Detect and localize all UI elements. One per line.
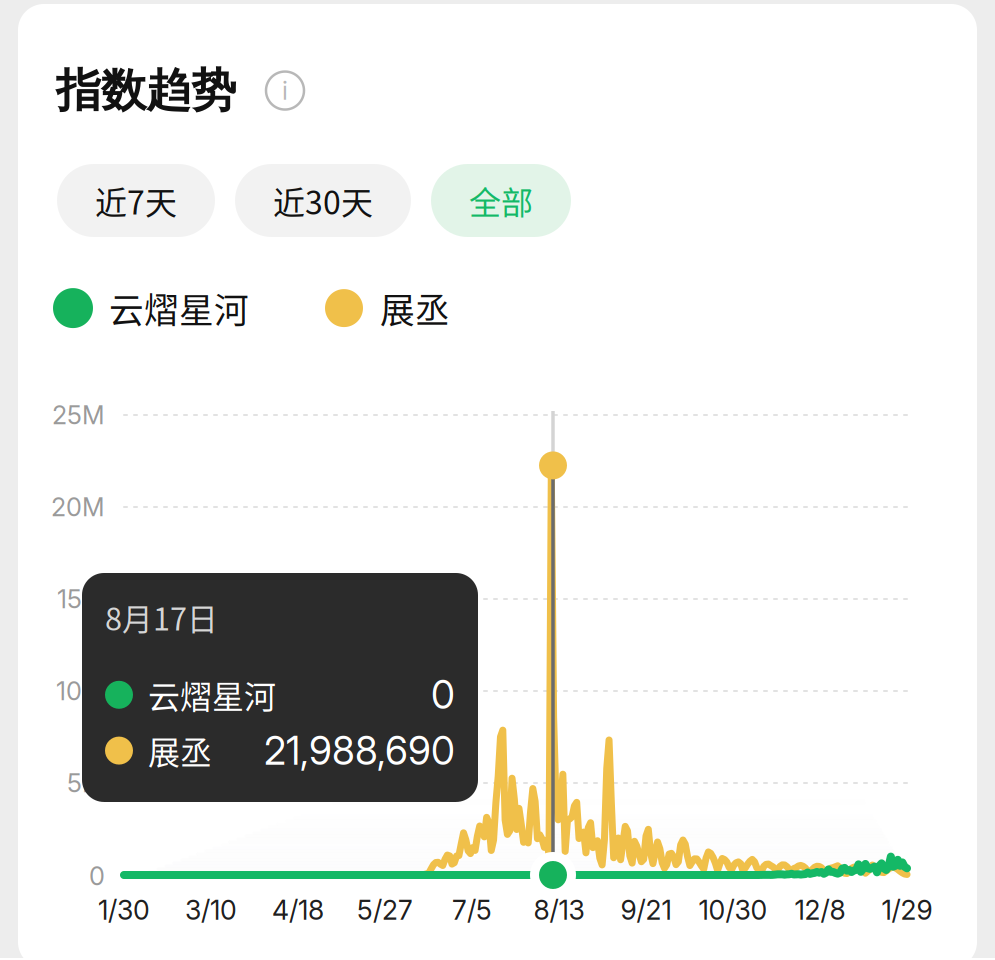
staticText: 7/5 <box>452 894 492 926</box>
staticText: 云熠星河 <box>109 283 249 333</box>
staticText: 25M <box>52 400 105 430</box>
staticText: 8/13 <box>533 894 584 926</box>
staticText: 21,988,690 <box>264 727 455 774</box>
staticText: 近30天 <box>273 177 373 224</box>
button[interactable]: 全部 <box>431 164 571 237</box>
button[interactable]: 近7天 <box>57 164 215 237</box>
staticText: 9/21 <box>620 894 671 926</box>
staticText: i <box>282 75 288 106</box>
staticText: 5/27 <box>357 894 413 926</box>
staticText: 10M <box>56 676 105 706</box>
staticText: 5M <box>67 768 105 798</box>
staticText: 8月17日 <box>105 595 218 639</box>
staticText: 全部 <box>469 177 533 224</box>
staticText: 10/30 <box>698 894 767 926</box>
staticText: 4/18 <box>272 894 324 926</box>
staticText: 展丞 <box>380 283 450 333</box>
staticText: 近7天 <box>95 177 177 224</box>
staticText: 指数趋势 <box>56 62 236 119</box>
staticText: 0 <box>89 861 105 891</box>
staticText: 12/8 <box>794 894 845 926</box>
button[interactable]: 关于指数趋势 <box>262 68 308 114</box>
button[interactable]: 近30天 <box>235 164 411 237</box>
staticText: 云熠星河 <box>148 672 276 718</box>
staticText: 1/29 <box>881 894 932 926</box>
staticText: 展丞 <box>148 727 212 774</box>
staticText: 0 <box>431 671 455 718</box>
staticText: 20M <box>51 492 105 522</box>
staticText: 15M <box>57 584 105 614</box>
staticText: 1/30 <box>98 894 150 926</box>
staticText: 3/10 <box>185 894 237 926</box>
